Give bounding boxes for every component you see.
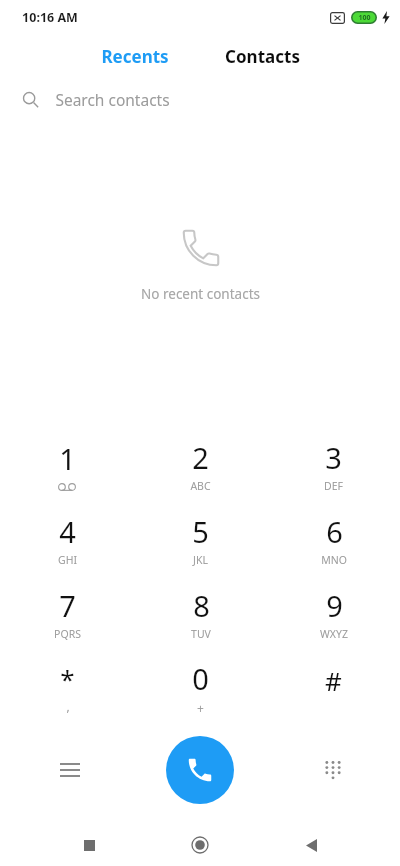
staticText: TUV <box>191 627 211 641</box>
button[interactable]: Back <box>289 824 333 866</box>
button[interactable]: Recents <box>91 39 179 74</box>
button[interactable]: 5 <box>134 502 267 576</box>
button[interactable]: Call <box>166 736 234 804</box>
staticText: 9 <box>326 586 343 625</box>
button[interactable]: 3 <box>267 428 400 502</box>
staticText: 8 <box>193 586 210 625</box>
staticText: 1 <box>59 439 76 478</box>
staticText: GHI <box>58 553 77 567</box>
staticText: 3 <box>325 438 342 477</box>
staticText: No recent contacts <box>141 285 260 303</box>
staticText: Search contacts <box>55 89 170 110</box>
staticText: 5 <box>192 512 209 551</box>
staticText: + <box>197 700 204 716</box>
button[interactable]: 1 <box>0 428 134 502</box>
button[interactable]: # <box>267 650 400 724</box>
staticText: 4 <box>59 512 76 551</box>
button[interactable]: 0 <box>134 650 267 724</box>
staticText: ABC <box>190 479 211 493</box>
button[interactable]: 2 <box>134 428 267 502</box>
staticText: 2 <box>192 438 209 477</box>
button[interactable]: 4 <box>0 502 134 576</box>
button[interactable]: Contacts <box>215 39 310 74</box>
button[interactable]: Search contacts <box>0 78 400 120</box>
button[interactable]: 9 <box>267 576 400 650</box>
button[interactable]: More options <box>46 746 94 794</box>
staticText: 10:16 AM <box>22 9 78 26</box>
staticText: PQRS <box>54 627 81 641</box>
button[interactable]: Recent apps <box>67 824 111 866</box>
button[interactable]: 6 <box>267 502 400 576</box>
staticText: 6 <box>326 512 343 551</box>
staticText: # <box>325 663 342 698</box>
staticText: 100 <box>358 13 371 23</box>
staticText: * <box>60 661 75 696</box>
staticText: JKL <box>193 553 208 567</box>
button[interactable]: * <box>0 650 134 724</box>
staticText: 7 <box>59 586 76 625</box>
staticText: WXYZ <box>320 627 348 641</box>
button[interactable]: 8 <box>134 576 267 650</box>
button[interactable]: 7 <box>0 576 134 650</box>
staticText: DEF <box>324 479 343 493</box>
staticText: MNO <box>321 553 347 567</box>
staticText: , <box>66 698 70 714</box>
staticText: Contacts <box>225 45 300 68</box>
button[interactable]: Home <box>178 824 222 866</box>
staticText: Recents <box>101 45 169 68</box>
button[interactable]: Dialpad <box>309 746 357 794</box>
staticText: 0 <box>192 659 209 698</box>
